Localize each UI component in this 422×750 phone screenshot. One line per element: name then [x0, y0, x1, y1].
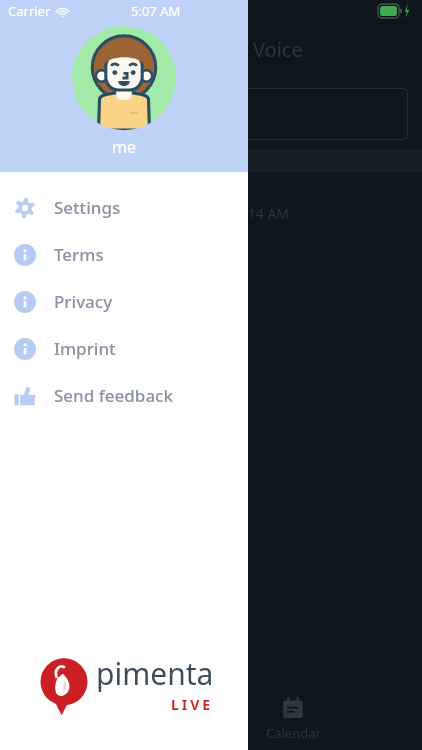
- button[interactable]: Calendar: [250, 688, 336, 750]
- staticText: me: [112, 136, 136, 158]
- staticText: Send feedback: [54, 384, 173, 407]
- staticText: Video: [120, 36, 173, 63]
- staticText: Settings: [54, 196, 121, 219]
- staticText: Carrier: [8, 2, 51, 20]
- button[interactable]: Imprint: [0, 325, 248, 372]
- button[interactable]: Name: [14, 88, 408, 140]
- staticText: Name: [30, 101, 87, 128]
- button[interactable]: Send feedback: [0, 372, 248, 419]
- button[interactable]: Privacy: [0, 278, 248, 325]
- button[interactable]: Terms: [0, 231, 248, 278]
- staticText: pimenta: [96, 653, 214, 694]
- staticText: 5:07 AM: [131, 2, 181, 20]
- button[interactable]: Settings: [0, 184, 248, 231]
- staticText: Privacy: [54, 290, 113, 313]
- button[interactable]: pimenta: [36, 653, 214, 714]
- staticText: Voice: [253, 36, 303, 63]
- staticText: 9:14 AM: [236, 204, 290, 223]
- staticText: Terms: [54, 243, 104, 266]
- staticText: Calendar: [266, 724, 321, 742]
- button[interactable]: Profile picture: [72, 26, 176, 130]
- staticText: Imprint: [54, 337, 116, 360]
- staticText: LIVE: [171, 695, 214, 714]
